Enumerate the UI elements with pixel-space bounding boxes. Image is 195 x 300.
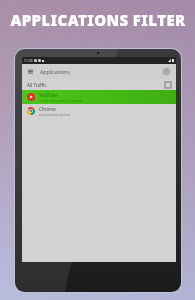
- staticText: All Traffic: [27, 82, 47, 88]
- staticText: 11:45: [24, 58, 33, 63]
- button[interactable]: Account: [162, 67, 171, 76]
- staticText: com.google.android.youtube: [39, 99, 83, 103]
- staticText: com.android.chrome: [39, 113, 71, 117]
- staticText: Applications: [40, 68, 70, 75]
- staticText: Chrome: [39, 106, 56, 112]
- button[interactable]: All Traffic: [22, 79, 176, 90]
- button[interactable]: Chrome: [22, 104, 176, 118]
- button[interactable]: Navigate up: [27, 68, 34, 75]
- staticText: APPLICATIONS FILTER: [10, 10, 186, 30]
- button[interactable]: Navigate up: [22, 64, 176, 79]
- button[interactable]: YouTube: [22, 90, 176, 104]
- staticText: YouTube: [39, 92, 58, 98]
- button[interactable]: Select all: [165, 82, 171, 88]
